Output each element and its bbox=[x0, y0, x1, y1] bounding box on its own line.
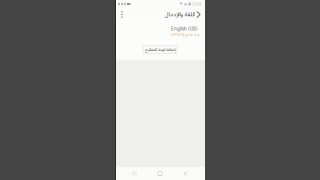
button[interactable]: Back bbox=[194, 8, 203, 20]
staticText: إضافة لوحة المفاتيح bbox=[144, 45, 175, 54]
button[interactable]: More options bbox=[117, 8, 127, 20]
button[interactable]: Back bbox=[179, 169, 191, 178]
staticText: اللغة والإدخال bbox=[164, 9, 194, 20]
staticText: English (US) bbox=[171, 26, 198, 31]
staticText: 12:34 bbox=[192, 2, 202, 6]
staticText: لوحة مفاتيح Samsung bbox=[170, 31, 199, 38]
button[interactable]: Home bbox=[154, 169, 166, 178]
button[interactable]: Recents bbox=[128, 169, 140, 178]
button[interactable]: إضافة لوحة المفاتيح bbox=[143, 46, 177, 54]
